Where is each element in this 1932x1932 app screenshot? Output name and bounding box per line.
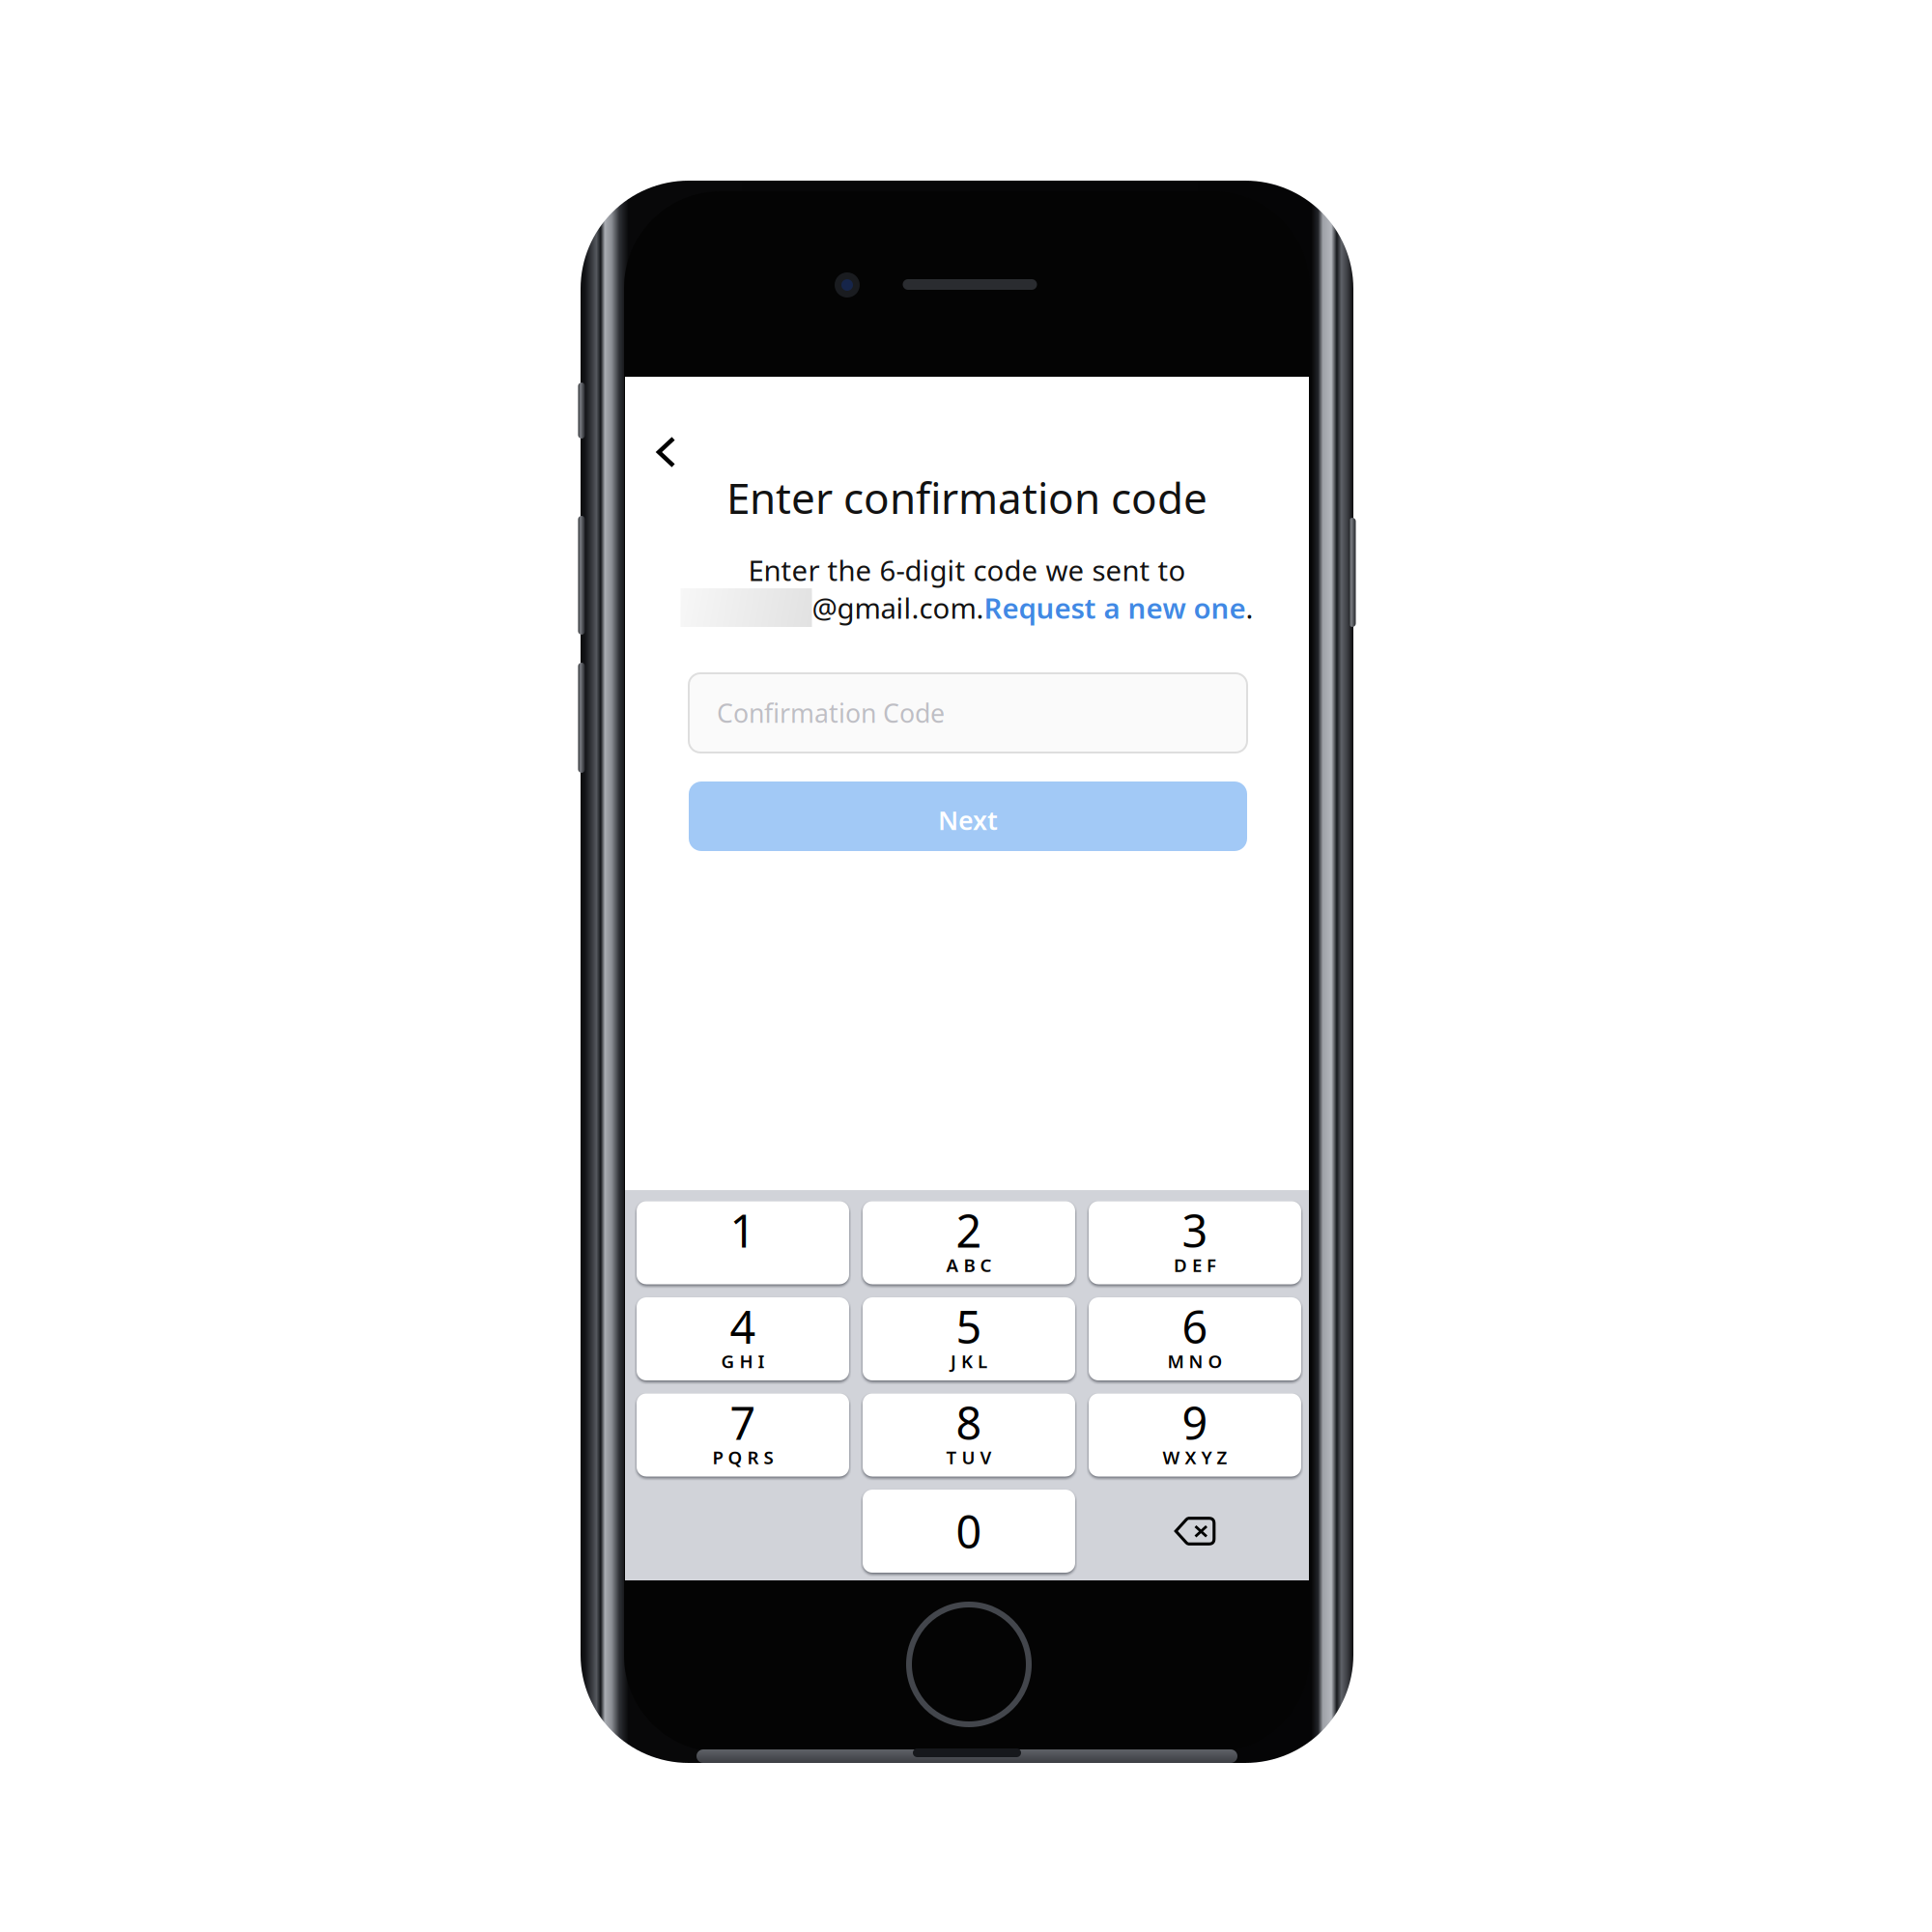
button[interactable]: 4: [637, 1297, 849, 1380]
button[interactable]: 3: [1089, 1201, 1301, 1284]
staticText: T U V: [946, 1445, 992, 1469]
staticText: 3: [1182, 1200, 1208, 1260]
button[interactable]: Back: [625, 408, 702, 493]
button[interactable]: 2: [863, 1201, 1075, 1284]
staticText: 4: [730, 1296, 756, 1356]
button[interactable]: 7: [637, 1393, 849, 1477]
staticText: 8: [956, 1392, 982, 1452]
staticText: Enter confirmation code: [726, 469, 1207, 526]
staticText: W X Y Z: [1163, 1445, 1227, 1469]
button[interactable]: 5: [863, 1297, 1075, 1380]
staticText: 2: [956, 1200, 982, 1260]
staticText: M N O: [1167, 1349, 1222, 1373]
staticText: @gmail.com.: [812, 589, 984, 626]
staticText: P Q R S: [712, 1445, 773, 1469]
staticText: Confirmation Code: [717, 696, 945, 730]
button[interactable]: Next: [689, 781, 1247, 851]
staticText: Next: [938, 803, 998, 837]
staticText: D E F: [1174, 1253, 1216, 1277]
button[interactable]: 1: [637, 1201, 849, 1284]
button[interactable]: 8: [863, 1393, 1075, 1477]
button[interactable]: Delete: [1089, 1490, 1301, 1573]
staticText: 5: [956, 1296, 982, 1356]
staticText: 7: [730, 1392, 756, 1452]
button[interactable]: 9: [1089, 1393, 1301, 1477]
staticText: .: [1246, 589, 1253, 626]
button[interactable]: Request a new one: [984, 589, 1246, 626]
staticText: Request a new one: [984, 589, 1246, 626]
staticText: Enter the 6-digit code we sent to: [748, 551, 1186, 589]
staticText: 9: [1182, 1392, 1208, 1452]
staticText: 0: [956, 1501, 982, 1561]
staticText: A B C: [946, 1253, 992, 1277]
staticText: 6: [1182, 1296, 1208, 1356]
staticText: 1: [730, 1200, 756, 1260]
staticText: J K L: [951, 1349, 987, 1373]
button[interactable]: 0: [863, 1490, 1075, 1573]
button[interactable]: 6: [1089, 1297, 1301, 1380]
staticText: G H I: [721, 1349, 765, 1373]
